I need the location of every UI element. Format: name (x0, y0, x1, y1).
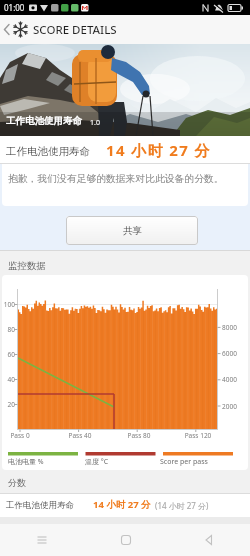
staticText: 2000 (222, 402, 246, 411)
staticText: 40 (2, 375, 15, 384)
staticText: Pass 0 (2, 431, 38, 440)
button[interactable]: 共享 (66, 216, 198, 245)
staticText: (14 小时 27 分) (155, 500, 209, 511)
staticText: Pass 40 (60, 431, 100, 440)
staticText: 6000 (222, 349, 246, 358)
button[interactable] (0, 15, 12, 44)
staticText: 4000 (222, 375, 246, 384)
staticText: 80 (2, 325, 15, 334)
staticText: Pass 80 (119, 431, 159, 440)
staticText: 工作电池使用寿命 (6, 115, 82, 127)
staticText: 工作电池使用寿命 (6, 500, 74, 511)
staticText: 共享 (123, 225, 142, 237)
staticText: 监控数据 (8, 260, 46, 272)
staticText: 20 (2, 400, 15, 409)
staticText: 01:00 (4, 2, 25, 13)
staticText: 14 小时 27 分 (93, 498, 151, 511)
staticText: 分数 (8, 477, 26, 488)
staticText: 抱歉，我们没有足够的数据来对比此设备的分数。 (8, 173, 224, 185)
button[interactable] (167, 524, 250, 556)
staticText: 工作电池使用寿命 (6, 145, 90, 158)
button[interactable] (0, 524, 84, 556)
staticText: 60 (2, 350, 15, 359)
staticText: 电池电量 % (8, 457, 44, 467)
button[interactable] (84, 524, 167, 556)
staticText: 14 小时 27 分 (106, 140, 212, 160)
staticText: Score per pass (160, 457, 208, 467)
staticText: SCORE DETAILS (33, 22, 117, 38)
staticText: 温度 °C (85, 457, 109, 467)
staticText: 8000 (222, 323, 246, 332)
staticText: 1.0 (90, 118, 100, 128)
staticText: 100 (2, 300, 15, 309)
staticText: Pass 120 (176, 431, 220, 440)
